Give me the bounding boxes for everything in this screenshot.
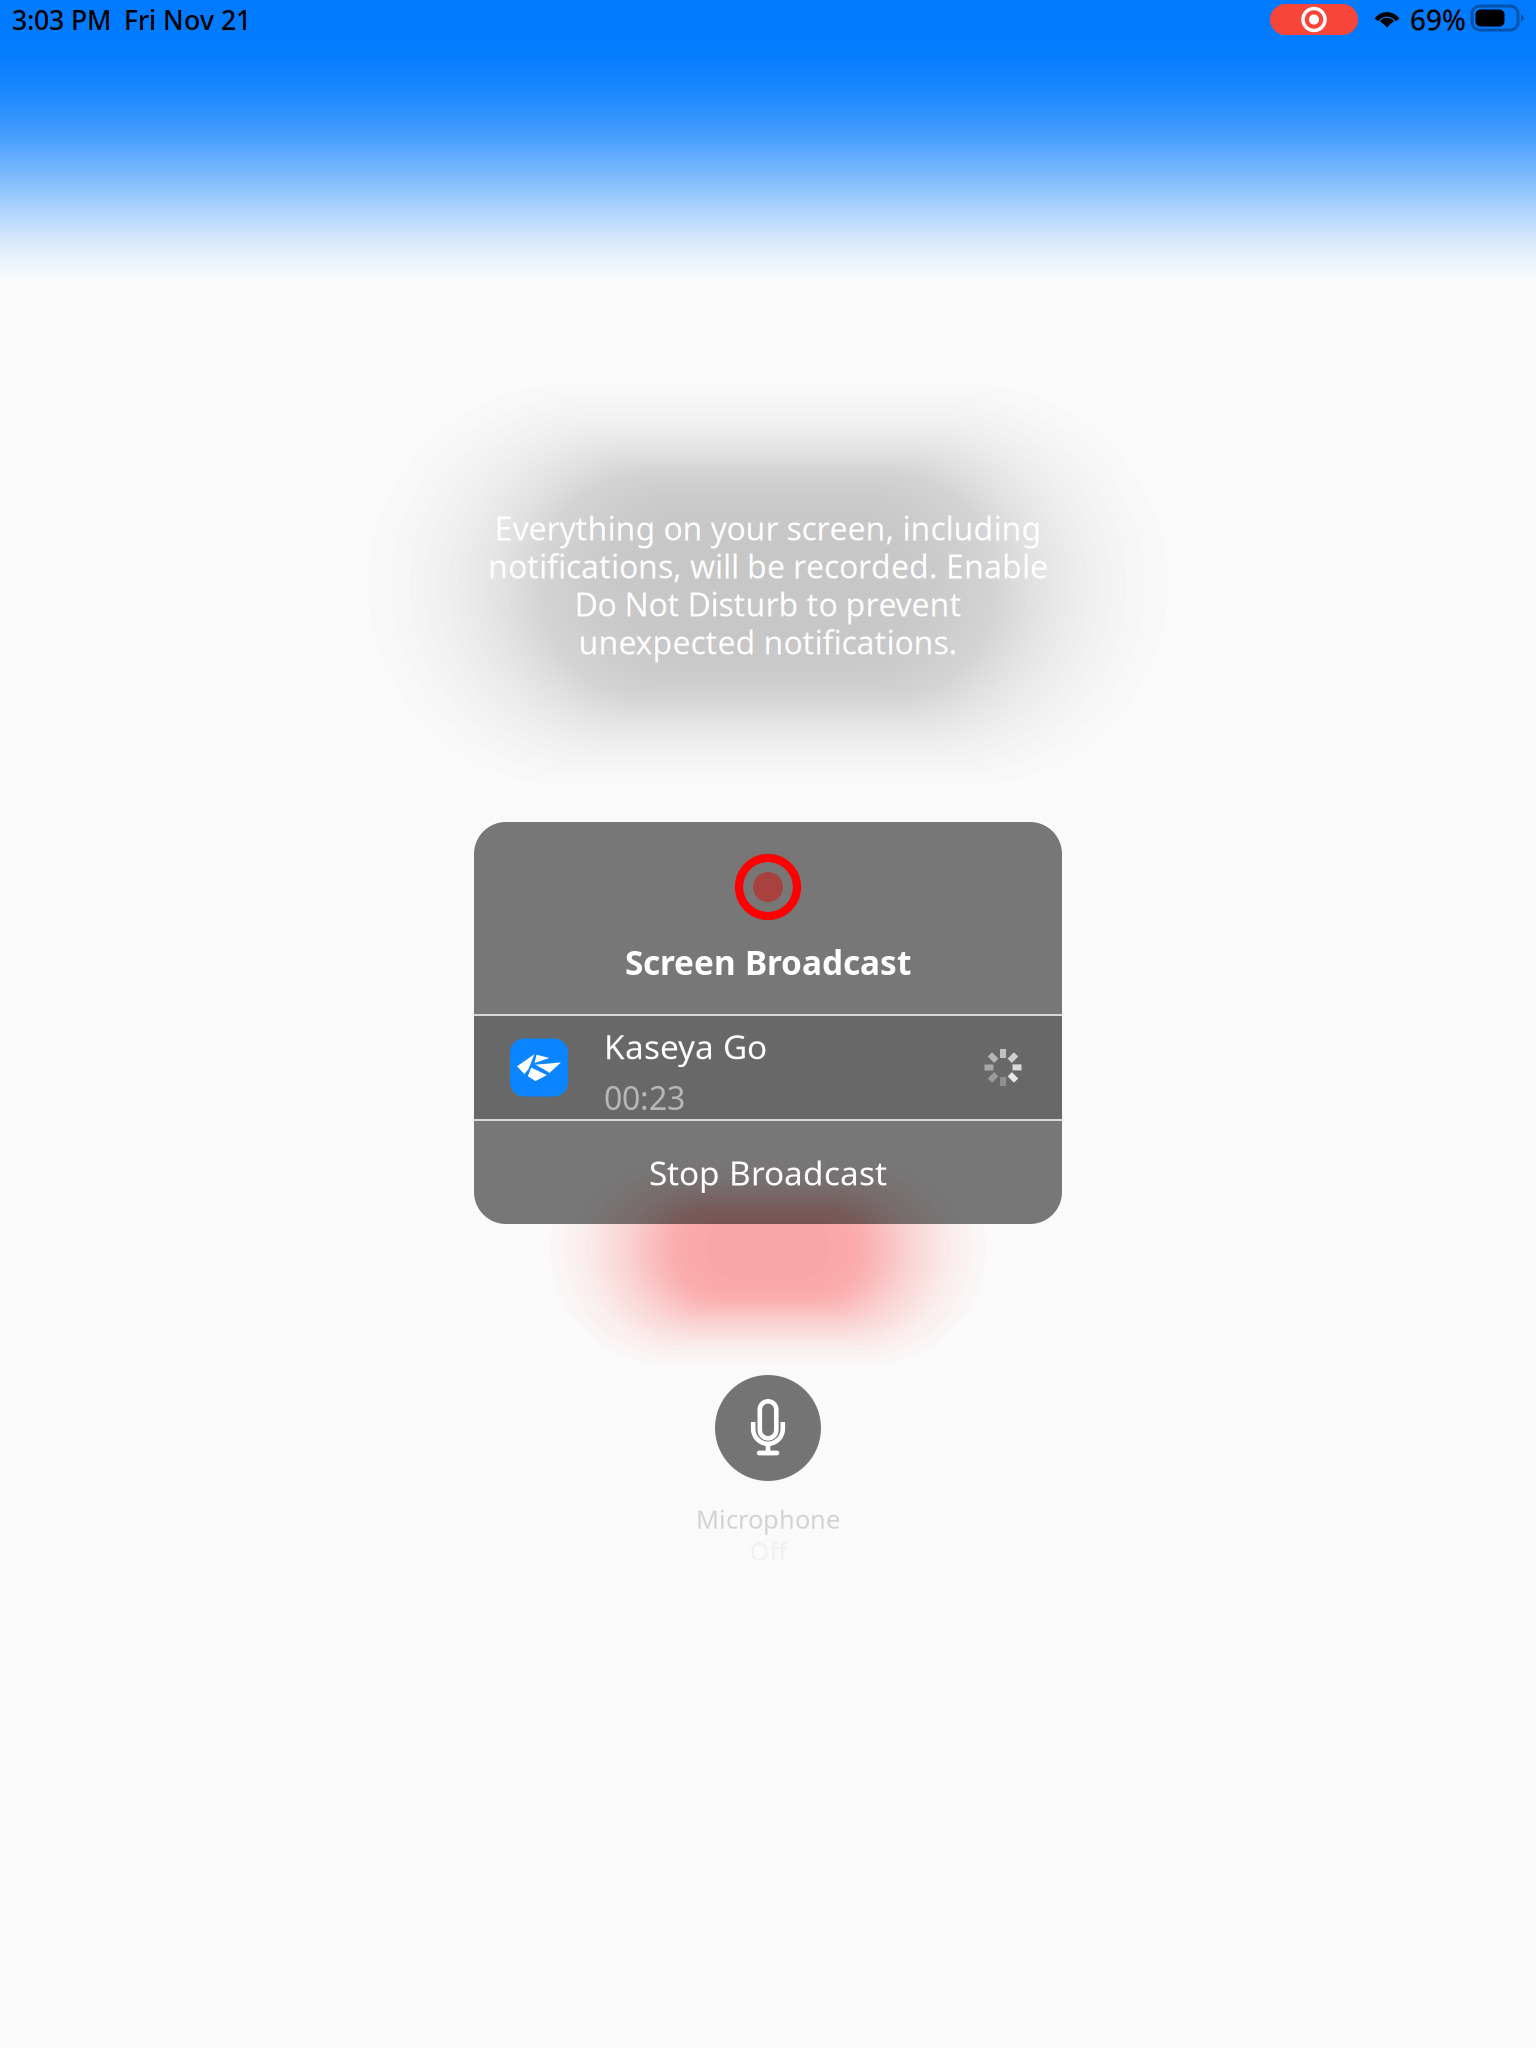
staticText: Do Not Disturb to prevent <box>574 583 961 625</box>
staticText: 69% <box>1410 1 1466 38</box>
button[interactable]: Microphone Off <box>715 1375 821 1481</box>
staticText: Microphone <box>696 1502 840 1536</box>
staticText: notifications, will be recorded. Enable <box>488 545 1048 587</box>
staticText: Fri Nov 21 <box>124 2 251 37</box>
staticText: Everything on your screen, including <box>494 507 1041 549</box>
staticText: 3:03 PM <box>12 2 111 37</box>
staticText: Kaseya Go <box>604 1024 767 1068</box>
button[interactable]: Stop Broadcast <box>474 1121 1062 1224</box>
staticText: Off <box>749 1534 786 1568</box>
staticText: unexpected notifications. <box>578 621 957 663</box>
staticText: 00:23 <box>604 1076 685 1119</box>
staticText: Screen Broadcast <box>625 940 911 984</box>
staticText: Stop Broadcast <box>649 1150 887 1195</box>
